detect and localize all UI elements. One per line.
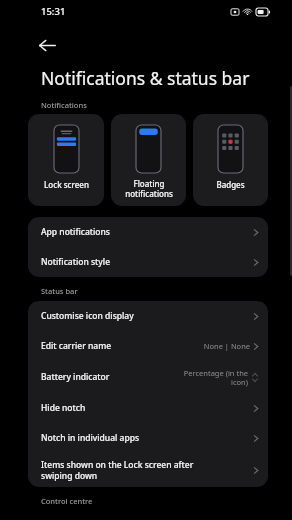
staticText: Notch in individual apps (41, 432, 253, 444)
button[interactable]: Notch in individual apps (28, 423, 268, 453)
staticText: Customise icon display (41, 310, 253, 322)
staticText: Control centre (41, 496, 93, 506)
staticText: Hide notch (41, 402, 253, 414)
staticText: Notifications (41, 100, 87, 110)
button[interactable]: App notifications (28, 217, 268, 247)
staticText: Percentage (in the icon) (183, 368, 248, 387)
button[interactable]: Edit carrier name (28, 331, 268, 361)
button[interactable]: Hide notch (28, 393, 268, 423)
button[interactable]: Customise icon display (28, 301, 268, 331)
staticText: Notifications & status bar (41, 66, 250, 90)
staticText: Lock screen (44, 179, 89, 190)
staticText: Notification style (41, 256, 253, 268)
staticText: Badges (216, 179, 245, 190)
staticText: Battery indicator (41, 371, 183, 383)
staticText: Floating notifications (125, 178, 173, 199)
button[interactable]: Lock screen (28, 114, 104, 206)
button[interactable]: Battery indicator (28, 361, 268, 393)
button[interactable]: Notification style (28, 247, 268, 277)
staticText: 15:31 (41, 5, 66, 18)
staticText: App notifications (41, 226, 253, 238)
button[interactable]: Floating notifications (111, 114, 186, 206)
staticText: Status bar (41, 286, 78, 296)
button[interactable]: Badges (193, 114, 268, 206)
staticText: None | None (203, 341, 250, 351)
button[interactable]: Back (32, 30, 62, 60)
button[interactable]: Items shown on the Lock screen after swi… (28, 453, 268, 487)
staticText: Items shown on the Lock screen after swi… (41, 459, 253, 481)
staticText: Edit carrier name (41, 340, 203, 352)
